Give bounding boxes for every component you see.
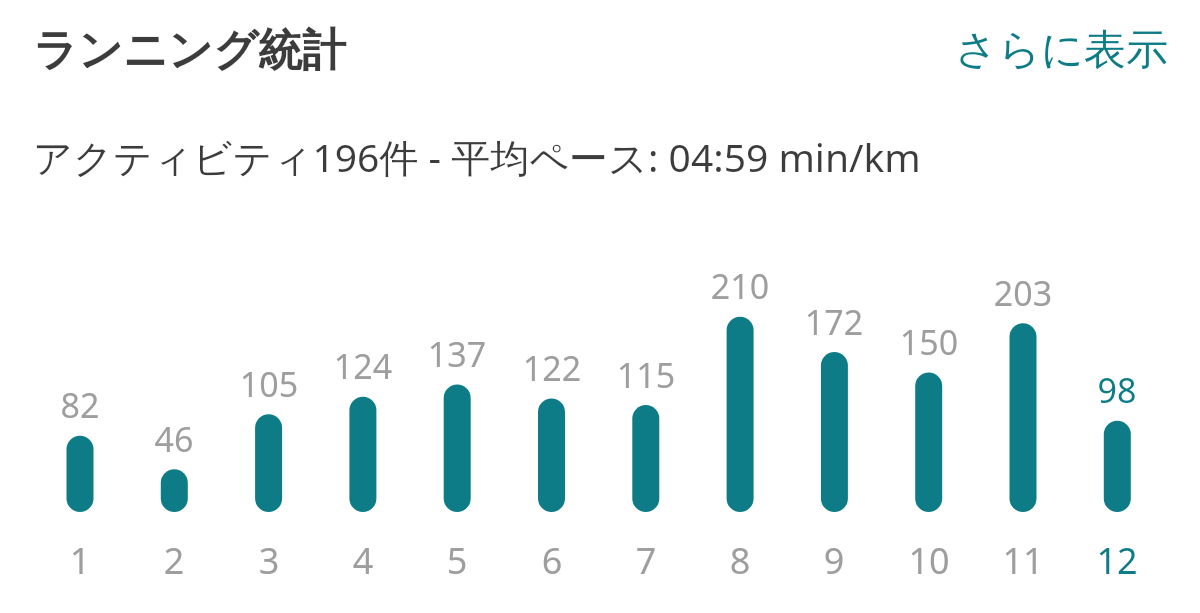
staticText: 137 <box>397 331 517 377</box>
staticText: 172 <box>774 299 894 345</box>
staticText: アクティビティ196件 - 平均ペース: 04:59 min/km <box>33 130 921 183</box>
button[interactable]: 4 <box>303 536 423 585</box>
button[interactable]: 7 <box>586 536 706 585</box>
button[interactable]: 2 <box>114 536 234 585</box>
staticText: 98 <box>1057 367 1177 413</box>
other: Monthly running activity bar chart <box>0 0 1200 613</box>
staticText: 203 <box>963 270 1083 316</box>
staticText: 115 <box>586 352 706 398</box>
staticText: 150 <box>869 319 989 365</box>
button[interactable]: 5 <box>397 536 517 585</box>
staticText: 105 <box>209 361 329 407</box>
button[interactable]: 8 <box>680 536 800 585</box>
button[interactable]: ランニング統計 <box>33 23 347 78</box>
staticText: 46 <box>114 416 234 462</box>
button[interactable]: さらに表示 <box>955 24 1168 77</box>
button[interactable]: 10 <box>869 536 989 585</box>
button[interactable]: 9 <box>774 536 894 585</box>
button[interactable]: 3 <box>209 536 329 585</box>
button[interactable]: 1 <box>20 536 140 585</box>
button[interactable]: 11 <box>963 536 1083 585</box>
staticText: 210 <box>680 263 800 309</box>
button[interactable]: 12 <box>1057 536 1177 585</box>
button[interactable]: 6 <box>492 536 612 585</box>
staticText: 122 <box>492 345 612 391</box>
staticText: 124 <box>303 343 423 389</box>
staticText: 82 <box>20 382 140 428</box>
